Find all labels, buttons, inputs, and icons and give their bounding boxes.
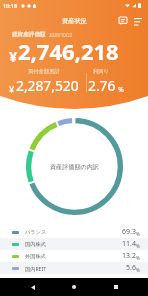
staticText: 総資産評価額	[12, 31, 46, 38]
staticText: %	[136, 231, 140, 237]
staticText: 買付金額累計	[28, 68, 60, 75]
staticText: バランス	[25, 229, 47, 236]
staticText: 5.6	[126, 263, 136, 273]
staticText: 資産評価額の内訳	[50, 163, 99, 171]
staticText: %	[136, 243, 140, 249]
button[interactable]: 外国株式	[0, 250, 148, 262]
staticText: 2,746,218	[18, 36, 119, 66]
staticText: %	[136, 255, 140, 261]
staticText: 2,287,520	[16, 76, 79, 95]
button[interactable]: Menu	[131, 12, 145, 30]
staticText: 国内株式	[25, 241, 46, 248]
staticText: 2.76	[88, 76, 116, 95]
button[interactable]: 国内REIT	[0, 262, 148, 274]
button[interactable]: Messages	[114, 12, 131, 30]
staticText: 2020/10/22	[49, 32, 73, 38]
staticText: 利回り	[93, 68, 110, 75]
staticText: ¥	[9, 83, 15, 95]
button[interactable]: Recent apps	[107, 278, 125, 296]
staticText: %	[118, 85, 124, 95]
staticText: %	[136, 267, 140, 273]
button[interactable]: Back	[24, 278, 42, 296]
staticText: 国内REIT	[25, 265, 47, 272]
button[interactable]: 国内株式	[0, 238, 148, 250]
staticText: ¥	[9, 46, 18, 66]
button[interactable]: バランス	[0, 226, 148, 238]
staticText: 外国株式	[25, 253, 46, 260]
button[interactable]: Home	[65, 278, 83, 296]
staticText: 資産状況	[62, 17, 87, 25]
staticText: 10:18	[3, 2, 18, 9]
staticText: 13.2	[122, 251, 136, 261]
staticText: 69.3	[122, 227, 136, 237]
staticText: 11.4	[122, 239, 136, 249]
